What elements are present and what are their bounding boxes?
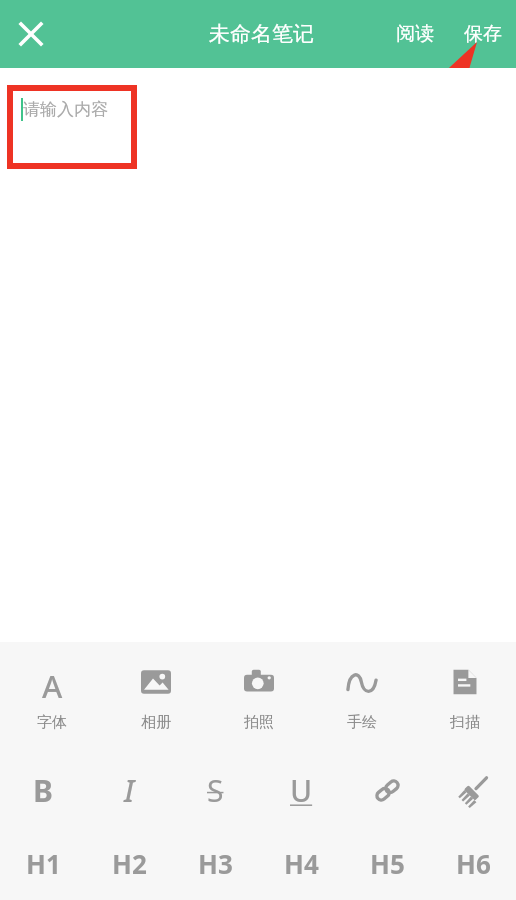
button[interactable]: Scan xyxy=(413,642,516,754)
staticText: H6 xyxy=(456,846,491,881)
button[interactable]: Album xyxy=(104,642,207,754)
staticText: 手绘 xyxy=(347,713,377,732)
staticText: H2 xyxy=(112,846,147,881)
staticText: 拍照 xyxy=(244,713,274,732)
staticText: 阅读 xyxy=(396,22,434,46)
button[interactable]: Take photo xyxy=(207,642,310,754)
other: Album xyxy=(141,667,171,697)
other: Insert link xyxy=(373,776,402,805)
staticText: 未命名笔记 xyxy=(209,21,314,47)
staticText: 请输入内容 xyxy=(23,99,108,120)
staticText: S xyxy=(207,770,224,811)
button[interactable]: Clear formatting xyxy=(430,754,516,827)
staticText: B xyxy=(33,770,53,811)
staticText: H3 xyxy=(198,846,233,881)
staticText: H5 xyxy=(370,846,405,881)
staticText: A xyxy=(42,665,63,699)
button[interactable]: Font xyxy=(0,642,104,754)
other: Hand draw xyxy=(346,666,378,698)
other: Take photo xyxy=(244,667,274,697)
button[interactable]: H3 xyxy=(172,827,258,900)
button[interactable]: B xyxy=(0,754,86,827)
button[interactable]: Close xyxy=(9,12,53,56)
button[interactable]: H6 xyxy=(430,827,516,900)
staticText: I xyxy=(124,770,135,811)
staticText: 扫描 xyxy=(450,713,480,732)
button[interactable]: 未命名笔记 xyxy=(209,21,314,47)
button[interactable]: 请输入内容 xyxy=(21,98,108,121)
button[interactable]: 保存 xyxy=(446,12,516,56)
button[interactable]: H4 xyxy=(258,827,344,900)
other: Scan xyxy=(451,668,479,696)
staticText: U xyxy=(290,770,313,811)
button[interactable]: H2 xyxy=(86,827,172,900)
button[interactable]: I xyxy=(86,754,172,827)
other: Font xyxy=(42,665,63,699)
button[interactable]: 阅读 xyxy=(384,12,446,56)
staticText: 字体 xyxy=(37,713,67,732)
staticText: 保存 xyxy=(464,22,502,46)
button[interactable]: Insert link xyxy=(344,754,430,827)
staticText: H4 xyxy=(284,846,319,881)
button[interactable]: U xyxy=(258,754,344,827)
button[interactable]: H5 xyxy=(344,827,430,900)
staticText: H1 xyxy=(26,846,61,881)
button[interactable]: S xyxy=(172,754,258,827)
staticText: 相册 xyxy=(141,713,171,732)
button[interactable]: Hand draw xyxy=(310,642,413,754)
button[interactable]: H1 xyxy=(0,827,86,900)
other: Clear formatting xyxy=(458,776,488,806)
